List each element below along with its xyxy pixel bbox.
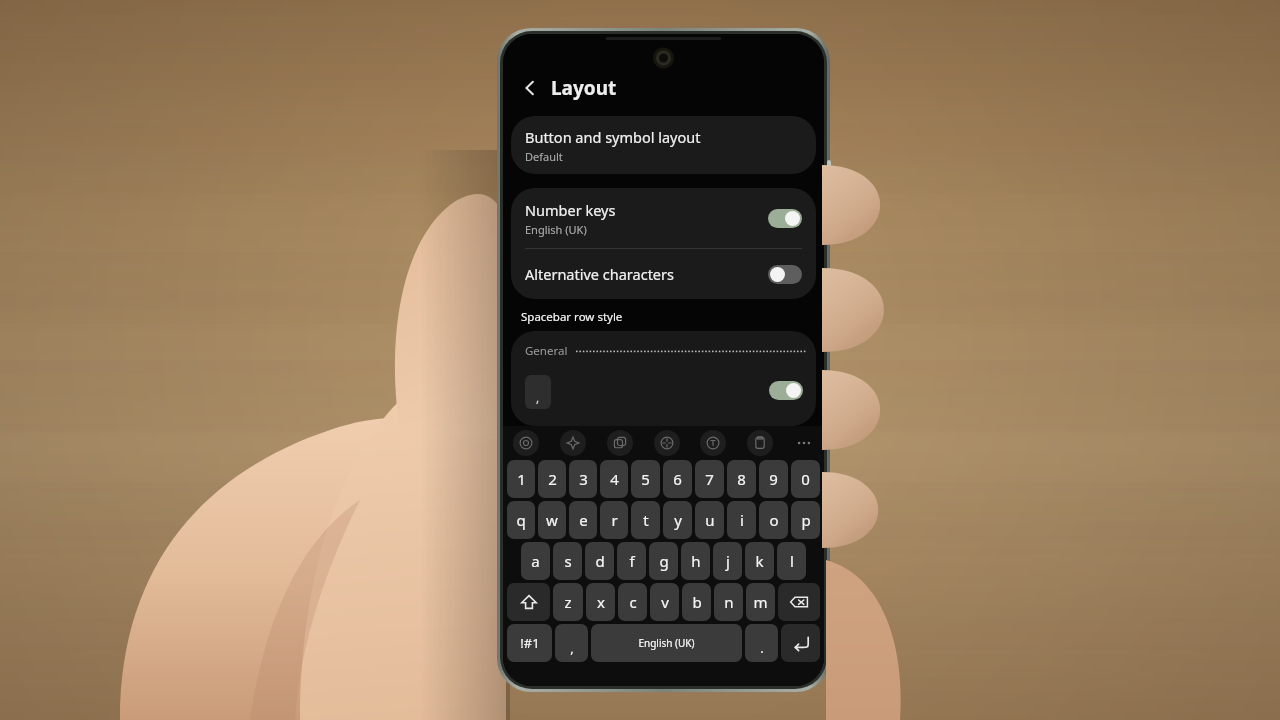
- button[interactable]: .: [745, 624, 778, 662]
- staticText: n: [724, 592, 734, 612]
- staticText: l: [790, 551, 794, 571]
- button[interactable]: 7: [695, 460, 724, 498]
- staticText: Number keys: [525, 200, 616, 220]
- staticText: 6: [673, 469, 682, 489]
- button[interactable]: 9: [759, 460, 788, 498]
- button[interactable]: Enter: [781, 624, 820, 662]
- button[interactable]: c: [618, 583, 647, 621]
- staticText: 3: [579, 469, 588, 489]
- button[interactable]: On: [769, 381, 803, 400]
- button[interactable]: ,: [555, 624, 588, 662]
- staticText: j: [726, 551, 730, 571]
- staticText: a: [531, 551, 540, 571]
- button[interactable]: f: [617, 542, 646, 580]
- button[interactable]: u: [695, 501, 724, 539]
- staticText: g: [659, 551, 669, 571]
- staticText: w: [546, 510, 558, 530]
- button[interactable]: 5: [631, 460, 660, 498]
- staticText: 9: [769, 469, 778, 489]
- staticText: General: [525, 343, 568, 359]
- staticText: r: [611, 510, 618, 530]
- staticText: u: [705, 510, 715, 530]
- staticText: 8: [737, 469, 746, 489]
- staticText: m: [753, 592, 768, 612]
- button[interactable]: w: [538, 501, 566, 539]
- staticText: i: [740, 510, 744, 530]
- button[interactable]: x: [586, 583, 615, 621]
- staticText: c: [629, 592, 637, 612]
- button[interactable]: Back: [515, 73, 545, 103]
- button[interactable]: 8: [727, 460, 756, 498]
- staticText: 4: [610, 469, 619, 489]
- staticText: Layout: [551, 75, 617, 101]
- staticText: e: [579, 510, 588, 530]
- button[interactable]: b: [682, 583, 711, 621]
- button[interactable]: Alternative characters: [511, 249, 816, 299]
- staticText: 5: [641, 469, 650, 489]
- button[interactable]: a: [521, 542, 550, 580]
- button[interactable]: Backspace: [778, 583, 820, 621]
- staticText: 1: [517, 469, 526, 489]
- button[interactable]: l: [777, 542, 806, 580]
- button[interactable]: d: [585, 542, 614, 580]
- button[interactable]: 1: [507, 460, 535, 498]
- button[interactable]: More options: [794, 433, 814, 453]
- button[interactable]: g: [649, 542, 678, 580]
- button[interactable]: 6: [663, 460, 692, 498]
- button[interactable]: !#1: [507, 624, 552, 662]
- button[interactable]: Button and symbol layout: [511, 116, 816, 174]
- staticText: f: [629, 551, 635, 571]
- button[interactable]: t: [631, 501, 660, 539]
- button[interactable]: m: [746, 583, 775, 621]
- button[interactable]: Modes: [654, 430, 680, 456]
- button[interactable]: Text: [700, 430, 726, 456]
- button[interactable]: n: [714, 583, 743, 621]
- button[interactable]: Stickers: [607, 430, 633, 456]
- button[interactable]: y: [663, 501, 692, 539]
- button[interactable]: Number keys: [511, 188, 816, 248]
- staticText: x: [597, 592, 605, 612]
- button[interactable]: English (UK): [591, 624, 742, 662]
- button[interactable]: Off: [768, 265, 802, 284]
- button[interactable]: General: [511, 331, 816, 426]
- staticText: ,: [570, 639, 574, 657]
- button[interactable]: h: [681, 542, 710, 580]
- button[interactable]: 4: [600, 460, 628, 498]
- button[interactable]: z: [553, 583, 583, 621]
- button[interactable]: o: [759, 501, 788, 539]
- staticText: d: [595, 551, 605, 571]
- staticText: English (UK): [638, 636, 695, 650]
- staticText: y: [674, 510, 682, 530]
- button[interactable]: p: [791, 501, 820, 539]
- button[interactable]: Clipboard: [747, 430, 773, 456]
- button[interactable]: i: [727, 501, 756, 539]
- button[interactable]: j: [713, 542, 742, 580]
- staticText: Spacebar row style: [521, 309, 623, 325]
- staticText: .: [760, 639, 764, 657]
- button[interactable]: On: [768, 209, 802, 228]
- button[interactable]: Shift: [507, 583, 550, 621]
- button[interactable]: r: [600, 501, 628, 539]
- staticText: 7: [705, 469, 714, 489]
- button[interactable]: e: [569, 501, 597, 539]
- staticText: s: [564, 551, 572, 571]
- button[interactable]: Effects: [560, 430, 586, 456]
- staticText: Button and symbol layout: [525, 127, 701, 147]
- button[interactable]: q: [507, 501, 535, 539]
- staticText: v: [661, 592, 669, 612]
- staticText: q: [516, 510, 526, 530]
- staticText: !#1: [520, 634, 540, 652]
- button[interactable]: s: [553, 542, 582, 580]
- button[interactable]: 0: [791, 460, 820, 498]
- button[interactable]: k: [745, 542, 774, 580]
- staticText: o: [769, 510, 779, 530]
- button[interactable]: v: [650, 583, 679, 621]
- staticText: h: [691, 551, 701, 571]
- staticText: 0: [801, 469, 810, 489]
- button[interactable]: 3: [569, 460, 597, 498]
- button[interactable]: 2: [538, 460, 566, 498]
- staticText: 2: [548, 469, 557, 489]
- staticText: Alternative characters: [525, 264, 674, 284]
- button[interactable]: Settings: [513, 430, 539, 456]
- staticText: Default: [525, 149, 563, 164]
